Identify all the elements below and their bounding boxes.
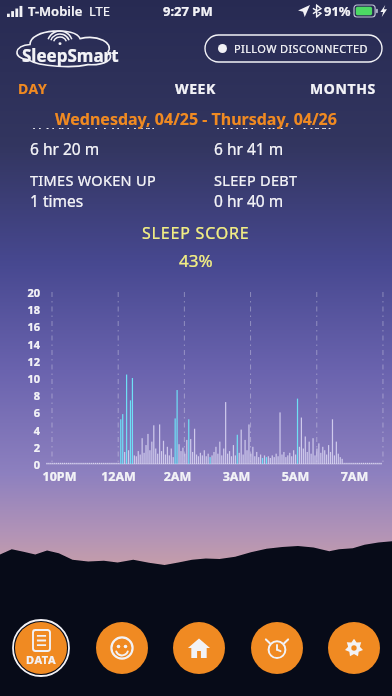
staticText: TOTAL REST TIME xyxy=(214,128,336,129)
staticText: 8 xyxy=(0,388,40,403)
staticText: TIMES WOKEN UP xyxy=(30,170,156,190)
staticText: MONTHS xyxy=(310,79,376,98)
button[interactable]: DAY xyxy=(0,74,130,102)
staticText: 6 xyxy=(0,405,40,420)
button[interactable]: PILLOW DISCONNECTED xyxy=(205,35,382,62)
button[interactable]: Alarm xyxy=(251,622,303,674)
button[interactable]: Data xyxy=(15,622,67,674)
staticText: DATA xyxy=(26,652,57,667)
button[interactable]: Baby monitor xyxy=(96,622,148,674)
staticText: 14 xyxy=(0,337,40,352)
staticText: WEEK xyxy=(175,79,216,98)
button[interactable]: MONTHS xyxy=(261,74,392,102)
staticText: T-Mobile xyxy=(28,2,83,20)
staticText: 43% xyxy=(179,249,213,272)
staticText: 2AM xyxy=(148,468,207,485)
staticText: 6 hr 41 m xyxy=(214,138,284,159)
staticText: 16 xyxy=(0,319,40,334)
staticText: DAY xyxy=(18,79,48,98)
button[interactable]: Home xyxy=(173,622,225,674)
staticText: 2 xyxy=(0,440,40,455)
staticText: 10PM xyxy=(30,468,89,485)
staticText: 5AM xyxy=(266,468,325,485)
staticText: 10 xyxy=(0,371,40,386)
button[interactable]: WEEK xyxy=(130,74,261,102)
staticText: TOTAL SLEEP TIME xyxy=(30,128,160,129)
staticText: Wednesday, 04/25 - Thursday, 04/26 xyxy=(0,108,392,130)
staticText: LTE xyxy=(89,2,111,20)
staticText: SLEEP DEBT xyxy=(214,170,298,190)
staticText: 20 xyxy=(0,285,40,300)
staticText: 3AM xyxy=(207,468,266,485)
staticText: 1 times xyxy=(30,190,84,211)
staticText: 0 hr 40 m xyxy=(214,190,284,211)
staticText: 7AM xyxy=(325,468,384,485)
staticText: 0 xyxy=(0,457,40,472)
staticText: 91% xyxy=(324,2,351,20)
staticText: 9:27 PM xyxy=(163,2,213,20)
staticText: 18 xyxy=(0,302,40,317)
staticText: 6 hr 20 m xyxy=(30,138,100,159)
staticText: 12AM xyxy=(89,468,148,485)
staticText: PILLOW DISCONNECTED xyxy=(234,41,369,56)
staticText: SLEEP SCORE xyxy=(142,222,250,244)
button[interactable]: Settings xyxy=(328,622,380,674)
staticText: 4 xyxy=(0,423,40,438)
staticText: SleepSmart xyxy=(22,44,119,67)
staticText: 12 xyxy=(0,354,40,369)
